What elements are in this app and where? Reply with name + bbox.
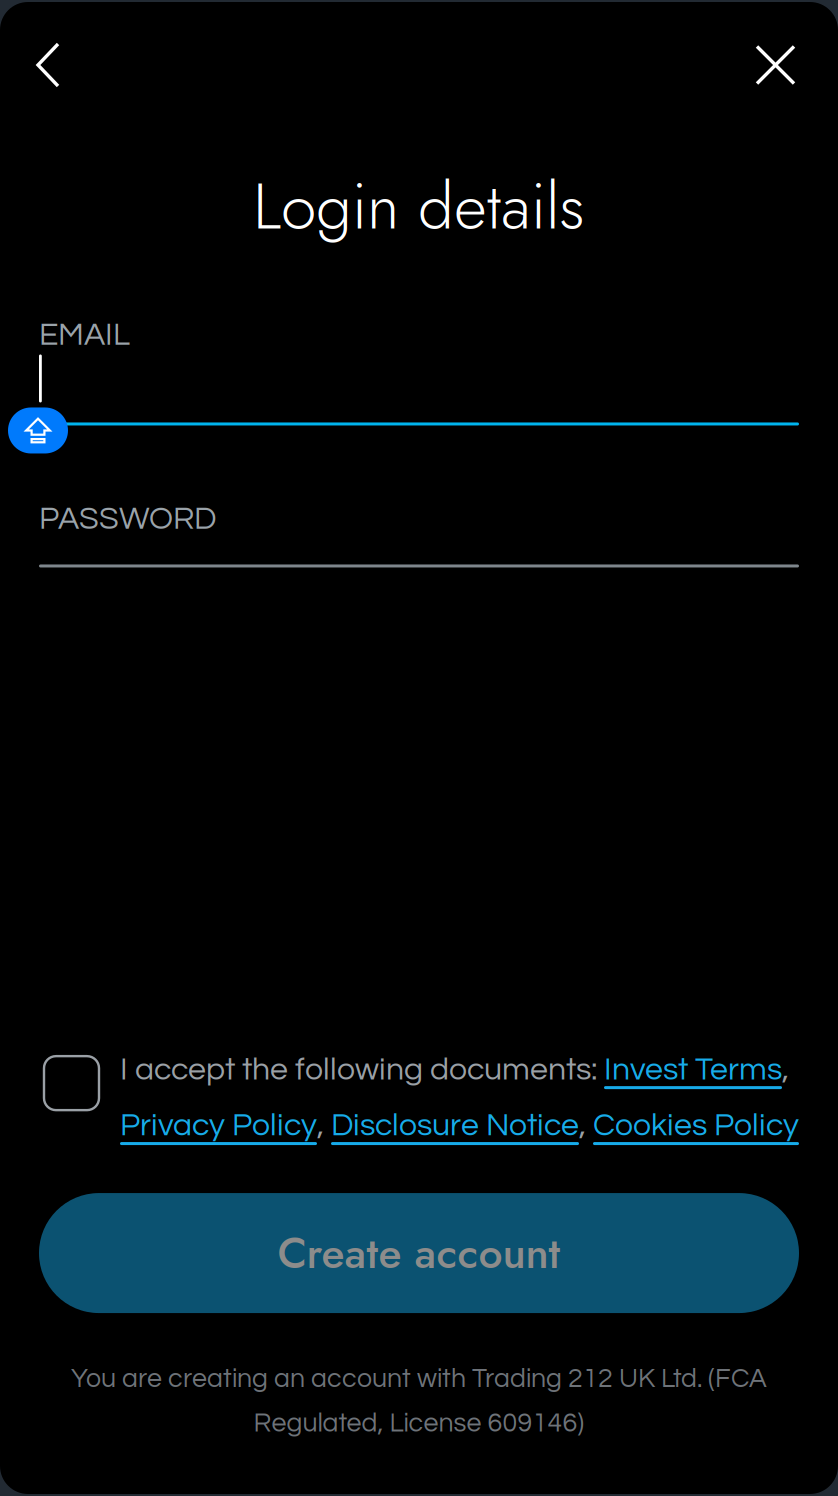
staticText: Invest Terms [604, 1053, 782, 1086]
button[interactable]: Close [757, 23, 835, 107]
staticText: Login details [253, 160, 585, 252]
staticText: Cookies Policy [593, 1109, 799, 1142]
staticText: Disclosure Notice [331, 1109, 579, 1142]
staticText: , [579, 1109, 593, 1142]
button[interactable]: Create account [39, 1193, 799, 1313]
button[interactable]: Accept the documents [44, 1053, 99, 1110]
button[interactable]: Privacy Policy [120, 1109, 317, 1148]
staticText: You are creating an account with Trading… [71, 1365, 767, 1393]
staticText: PASSWORD [39, 502, 216, 535]
staticText: I accept the following documents: [120, 1053, 604, 1086]
staticText: , [782, 1053, 789, 1086]
staticText: EMAIL [39, 318, 130, 351]
staticText: Privacy Policy [120, 1109, 317, 1142]
staticText: Create account [277, 1222, 560, 1284]
staticText: , [317, 1109, 331, 1142]
button[interactable]: Invest Terms [604, 1053, 782, 1092]
button[interactable]: Cookies Policy [593, 1109, 799, 1148]
button[interactable]: Disclosure Notice [331, 1109, 579, 1148]
staticText: Regulated, License 609146) [253, 1409, 584, 1437]
button[interactable]: Back [0, 23, 58, 107]
